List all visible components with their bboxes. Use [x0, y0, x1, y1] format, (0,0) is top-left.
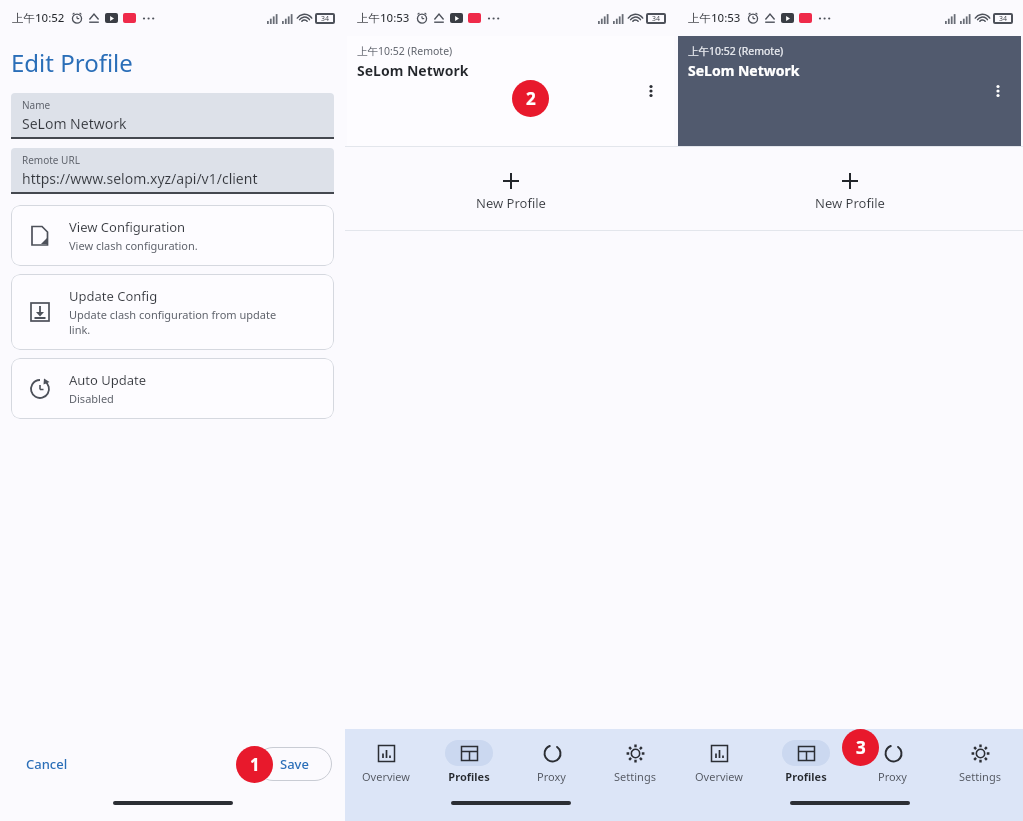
- button[interactable]: Profiles: [762, 729, 849, 795]
- button[interactable]: 上午10:52 (Remote): [347, 36, 674, 146]
- button[interactable]: Overview: [676, 729, 762, 795]
- staticText: 上午10:53: [357, 10, 410, 26]
- staticText: 上午10:52 (Remote): [688, 44, 784, 58]
- staticText: https://www.selom.xyz/api/v1/client: [22, 169, 258, 188]
- staticText: Update clash configuration from update l…: [69, 307, 277, 337]
- staticText: Profiles: [448, 769, 490, 784]
- button[interactable]: More options: [983, 76, 1013, 106]
- button[interactable]: Settings: [936, 729, 1023, 795]
- staticText: 2: [526, 87, 536, 110]
- button[interactable]: More options: [636, 76, 666, 106]
- button[interactable]: Profiles: [427, 729, 510, 795]
- staticText: Disabled: [69, 391, 114, 406]
- button[interactable]: Update Config: [11, 274, 334, 350]
- staticText: 上午10:53: [688, 10, 741, 26]
- staticText: 34: [321, 14, 330, 24]
- button[interactable]: Name: [11, 93, 334, 137]
- button[interactable]: Proxy: [510, 729, 593, 795]
- staticText: Proxy: [878, 769, 907, 784]
- button[interactable]: Remote URL: [11, 148, 334, 192]
- staticText: Update Config: [69, 287, 158, 305]
- staticText: Settings: [614, 769, 656, 784]
- staticText: 3: [856, 736, 866, 759]
- staticText: Proxy: [537, 769, 566, 784]
- staticText: View Configuration: [69, 218, 186, 236]
- staticText: 上午10:52: [12, 10, 65, 26]
- staticText: SeLom Network: [357, 61, 469, 80]
- staticText: New Profile: [815, 194, 885, 212]
- staticText: Profiles: [785, 769, 827, 784]
- button[interactable]: New Profile: [345, 152, 676, 230]
- button[interactable]: Cancel: [22, 751, 72, 777]
- staticText: 34: [652, 14, 661, 24]
- staticText: 上午10:52 (Remote): [357, 44, 453, 58]
- staticText: Overview: [362, 769, 410, 784]
- staticText: View clash configuration.: [69, 238, 198, 253]
- staticText: 34: [999, 14, 1008, 24]
- button[interactable]: Settings: [593, 729, 676, 795]
- button[interactable]: Save: [256, 747, 332, 781]
- button[interactable]: View Configuration: [11, 205, 334, 266]
- staticText: Auto Update: [69, 371, 147, 389]
- staticText: Remote URL: [22, 153, 80, 167]
- staticText: Save: [280, 755, 309, 773]
- staticText: Edit Profile: [11, 46, 133, 79]
- staticText: Name: [22, 98, 51, 112]
- button[interactable]: 上午10:52 (Remote): [678, 36, 1021, 146]
- button[interactable]: Overview: [345, 729, 427, 795]
- staticText: SeLom Network: [688, 61, 800, 80]
- staticText: Settings: [959, 769, 1001, 784]
- button[interactable]: New Profile: [676, 152, 1023, 230]
- staticText: Overview: [695, 769, 743, 784]
- staticText: SeLom Network: [22, 114, 127, 133]
- button[interactable]: Proxy: [849, 729, 936, 795]
- button[interactable]: Auto Update: [11, 358, 334, 419]
- staticText: 1: [250, 753, 260, 776]
- staticText: New Profile: [476, 194, 546, 212]
